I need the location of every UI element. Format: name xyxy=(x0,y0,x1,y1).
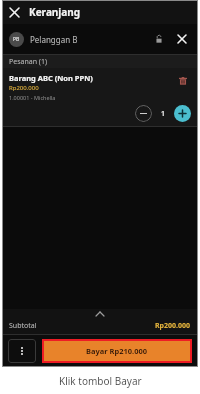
staticText: Subtotal xyxy=(9,321,155,331)
button[interactable]: Increase quantity xyxy=(174,105,191,122)
staticText: Keranjang xyxy=(29,5,81,19)
staticText: 1.00001 - Michella xyxy=(9,94,56,101)
staticText: Barang ABC (Non PPN) xyxy=(9,73,93,83)
button[interactable]: Decrease quantity xyxy=(135,105,152,122)
staticText: Pesanan (1) xyxy=(9,57,48,67)
staticText: Rp200.000 xyxy=(9,84,39,92)
button[interactable]: Lock price xyxy=(150,30,168,48)
button[interactable]: More options xyxy=(8,339,36,363)
button[interactable]: Expand details xyxy=(2,309,198,318)
button[interactable]: Close xyxy=(2,0,26,24)
staticText: PB xyxy=(13,36,20,43)
staticText: 1 xyxy=(161,109,166,119)
staticText: Pelanggan B xyxy=(30,34,150,45)
button[interactable]: PB xyxy=(2,24,198,54)
staticText: Bayar Rp210.000 xyxy=(86,346,148,356)
button[interactable]: Bayar Rp210.000 xyxy=(44,341,190,361)
staticText: Klik tombol Bayar xyxy=(59,374,142,388)
staticText: Rp200.000 xyxy=(155,321,191,331)
button[interactable]: Remove customer xyxy=(173,30,191,48)
button[interactable]: Delete item xyxy=(175,73,191,89)
